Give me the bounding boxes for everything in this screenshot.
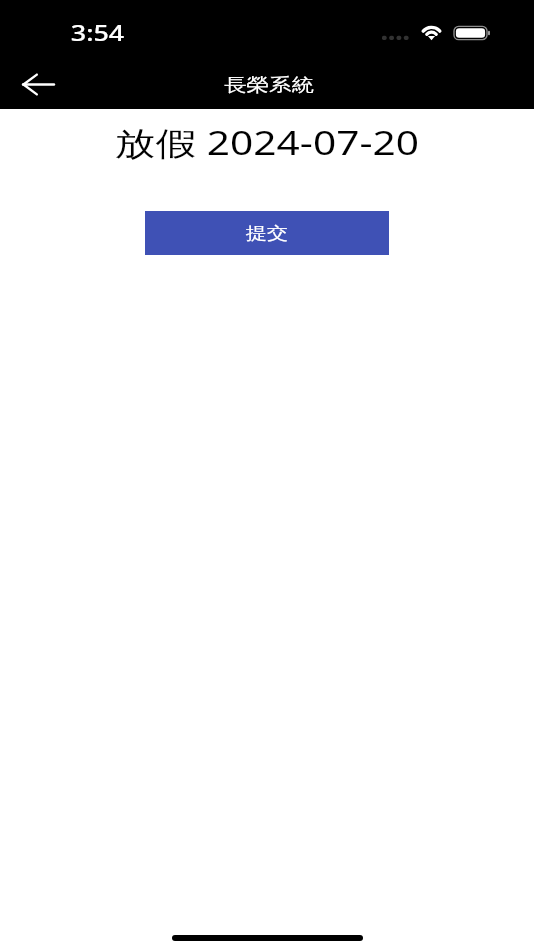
- staticText: 提交: [246, 223, 288, 244]
- staticText: 長榮系統: [224, 74, 314, 97]
- staticText: 放假 2024-07-20: [0, 120, 534, 164]
- staticText: 3:54: [71, 18, 124, 47]
- button[interactable]: 提交: [145, 211, 389, 255]
- button[interactable]: Back: [14, 62, 62, 106]
